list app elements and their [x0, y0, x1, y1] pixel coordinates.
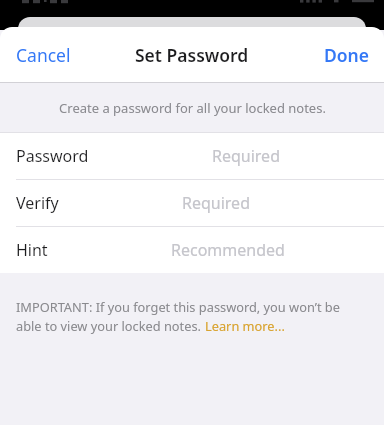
- button[interactable]: Done: [308, 33, 384, 77]
- staticText: IMPORTANT: If you forget this password, …: [16, 298, 340, 315]
- staticText: Set Password: [135, 43, 249, 67]
- staticText: Learn more...: [205, 317, 285, 334]
- staticText: able to view your locked notes.: [16, 317, 205, 334]
- button[interactable]: Verify: [0, 180, 384, 226]
- staticText: Verify: [16, 192, 59, 214]
- button[interactable]: Cancel: [0, 33, 87, 77]
- staticText: Recommended: [171, 239, 285, 261]
- staticText: Hint: [16, 239, 48, 261]
- staticText: Password: [16, 145, 89, 167]
- staticText: Cancel: [16, 43, 71, 67]
- button[interactable]: Learn more...: [205, 317, 285, 334]
- staticText: Done: [324, 43, 370, 67]
- staticText: Create a password for all your locked no…: [59, 99, 326, 117]
- staticText: Required: [182, 192, 250, 214]
- button[interactable]: Hint: [0, 227, 384, 273]
- button[interactable]: Password: [0, 133, 384, 179]
- staticText: Required: [212, 145, 280, 167]
